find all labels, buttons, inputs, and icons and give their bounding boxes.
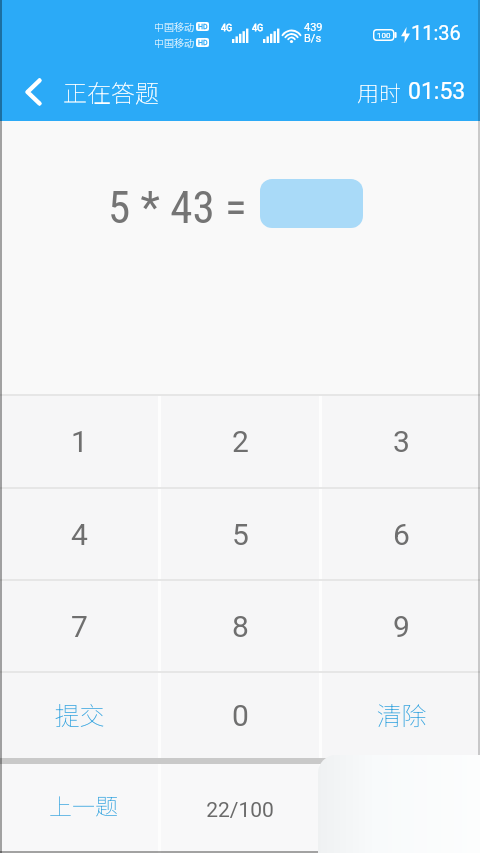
- staticText: 5 * 43 =: [108, 181, 247, 234]
- staticText: B/s: [304, 32, 322, 45]
- button[interactable]: [260, 179, 363, 228]
- button[interactable]: 4: [0, 489, 158, 579]
- button[interactable]: 8: [161, 581, 319, 671]
- staticText: HD: [198, 39, 208, 47]
- staticText: 3: [393, 424, 410, 459]
- staticText: 用时: [357, 76, 402, 108]
- button[interactable]: 7: [0, 581, 158, 671]
- staticText: 11:36: [411, 21, 461, 44]
- button[interactable]: 上一题: [0, 764, 158, 853]
- staticText: 4G: [221, 23, 233, 34]
- button[interactable]: 1: [0, 396, 158, 487]
- staticText: 清除: [376, 696, 427, 732]
- button[interactable]: 清除: [322, 673, 480, 758]
- staticText: HD: [198, 23, 208, 31]
- button[interactable]: [322, 764, 480, 853]
- staticText: 中国移动: [154, 19, 194, 33]
- staticText: 100: [377, 31, 391, 40]
- staticText: 正在答题: [63, 74, 159, 109]
- staticText: 8: [232, 609, 249, 644]
- staticText: 5: [232, 517, 249, 552]
- button[interactable]: 9: [322, 581, 480, 671]
- button[interactable]: 2: [161, 396, 319, 487]
- staticText: 9: [393, 609, 410, 644]
- staticText: 上一题: [49, 788, 118, 821]
- staticText: 6: [393, 517, 410, 552]
- staticText: 439: [304, 21, 323, 34]
- button[interactable]: 5: [161, 489, 319, 579]
- staticText: 1: [71, 424, 88, 459]
- staticText: 0: [232, 698, 249, 733]
- button[interactable]: [25, 78, 41, 106]
- button[interactable]: 3: [322, 396, 480, 487]
- staticText: 提交: [54, 696, 105, 732]
- staticText: 7: [71, 609, 88, 644]
- button[interactable]: 22/100: [161, 764, 319, 853]
- button[interactable]: 6: [322, 489, 480, 579]
- staticText: 2: [232, 424, 249, 459]
- button[interactable]: 提交: [0, 673, 158, 758]
- staticText: 4G: [252, 23, 264, 34]
- staticText: 中国移动: [154, 35, 194, 49]
- button[interactable]: 0: [161, 673, 319, 758]
- staticText: 4: [71, 517, 88, 552]
- staticText: 22/100: [206, 798, 274, 823]
- staticText: 01:53: [408, 78, 466, 105]
